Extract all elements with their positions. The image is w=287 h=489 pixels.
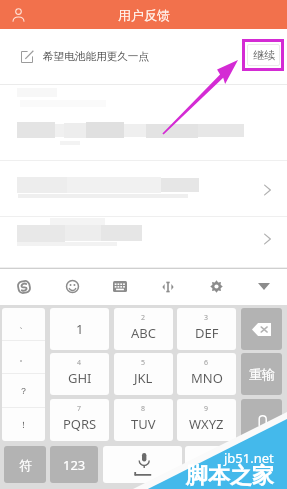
staticText: 8: [141, 404, 146, 414]
staticText: GHI: [68, 369, 92, 387]
button[interactable]: 6: [177, 353, 236, 395]
button[interactable]: Keyboard layout: [96, 268, 144, 305]
staticText: 6: [204, 358, 209, 368]
button[interactable]: 重输: [241, 353, 282, 395]
button[interactable]: 7: [50, 399, 109, 441]
staticText: ABC: [131, 324, 156, 342]
staticText: ？: [19, 385, 28, 396]
button[interactable]: Backspace: [241, 308, 282, 350]
staticText: 123: [63, 456, 86, 474]
button[interactable]: 5: [114, 353, 173, 395]
staticText: 4: [77, 358, 82, 368]
staticText: 。: [205, 457, 217, 472]
button[interactable]: Enter: [241, 399, 282, 441]
button[interactable]: 123: [50, 446, 98, 483]
button[interactable]: Hide keyboard: [240, 268, 287, 305]
button[interactable]: Settings: [192, 268, 240, 305]
staticText: ！: [19, 419, 28, 430]
button[interactable]: 希望电池能用更久一点: [21, 29, 287, 84]
button[interactable]: ？: [2, 374, 45, 407]
button[interactable]: Cursor move: [144, 268, 192, 305]
staticText: TUV: [131, 415, 156, 433]
staticText: PQRS: [63, 415, 97, 433]
button[interactable]: 3: [177, 308, 236, 350]
staticText: 。: [19, 352, 28, 363]
staticText: 2: [141, 313, 146, 323]
staticText: 脚本之家: [186, 462, 274, 489]
staticText: MNO: [191, 369, 223, 387]
staticText: jb51.net: [224, 449, 274, 467]
staticText: JKL: [134, 369, 153, 387]
staticText: 重输: [249, 366, 275, 382]
button[interactable]: Account: [0, 0, 36, 29]
staticText: 5: [141, 358, 146, 368]
staticText: 9: [204, 404, 209, 414]
staticText: 继续: [253, 48, 275, 62]
button[interactable]: 1: [50, 308, 109, 350]
button[interactable]: 。: [2, 341, 45, 373]
button[interactable]: 4: [50, 353, 109, 395]
button[interactable]: 2: [114, 308, 173, 350]
staticText: 1: [76, 320, 84, 338]
staticText: 7: [77, 404, 82, 414]
staticText: 希望电池能用更久一点: [43, 50, 149, 63]
button[interactable]: 9: [177, 399, 236, 441]
button[interactable]: 继续: [247, 44, 280, 66]
staticText: DEF: [195, 324, 219, 342]
button[interactable]: Sogou input: [0, 268, 48, 305]
button[interactable]: ！: [2, 408, 45, 441]
button[interactable]: Voice input: [103, 446, 182, 483]
staticText: 用户反馈: [118, 7, 170, 23]
staticText: 符: [19, 457, 32, 473]
staticText: 3: [204, 313, 209, 323]
staticText: WXYZ: [189, 415, 224, 433]
button[interactable]: Emoji: [48, 268, 96, 305]
button[interactable]: 8: [114, 399, 173, 441]
button[interactable]: 符: [4, 446, 46, 483]
staticText: 、: [19, 319, 28, 330]
button[interactable]: 。: [185, 446, 237, 483]
